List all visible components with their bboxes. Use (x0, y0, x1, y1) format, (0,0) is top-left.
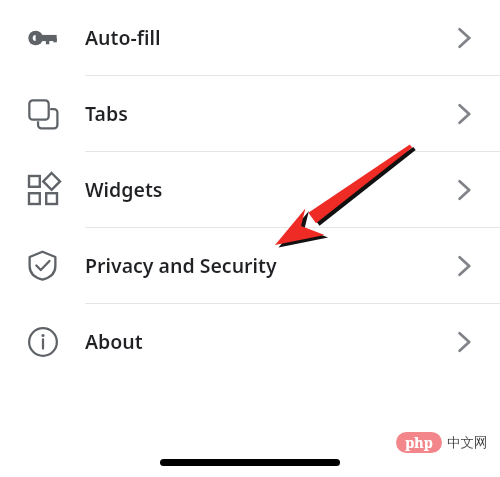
staticText: Widgets (85, 176, 428, 203)
staticText: Privacy and Security (85, 252, 428, 279)
staticText: Tabs (85, 100, 428, 127)
button[interactable]: Auto-fill (0, 0, 500, 75)
staticText: About (85, 328, 428, 355)
button[interactable]: Privacy and Security (0, 228, 500, 303)
staticText: php (405, 433, 433, 452)
button[interactable]: About (0, 304, 500, 379)
staticText: 中文网 (447, 434, 488, 451)
button[interactable]: Tabs (0, 76, 500, 151)
button[interactable]: Widgets (0, 152, 500, 227)
staticText: Auto-fill (85, 24, 428, 51)
